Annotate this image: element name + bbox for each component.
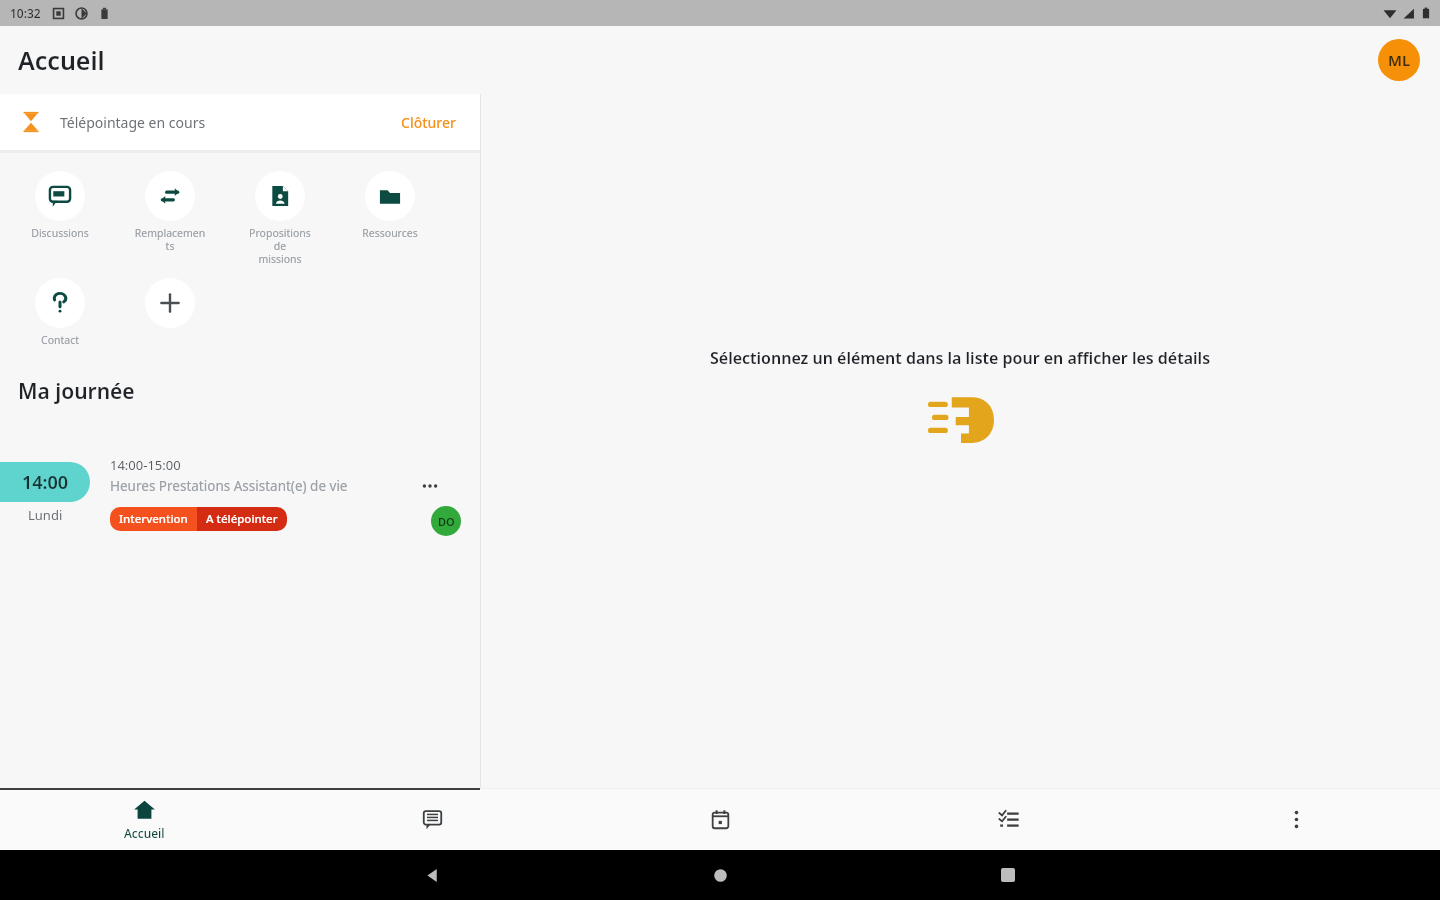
staticText: Discussions xyxy=(31,226,89,240)
button[interactable]: Clôturer xyxy=(397,109,460,136)
button[interactable]: Contact xyxy=(24,278,96,347)
staticText: DO xyxy=(438,514,455,529)
staticText: A télépointer xyxy=(206,511,278,527)
staticText: Intervention xyxy=(119,511,188,527)
staticText: Contact xyxy=(41,333,79,347)
button[interactable]: Tâches xyxy=(864,788,1152,850)
staticText: Remplacements xyxy=(134,226,206,253)
staticText: 14:00 xyxy=(22,470,69,495)
button[interactable]: Intervention xyxy=(110,507,287,531)
button[interactable]: Plus d'options xyxy=(416,472,444,500)
button[interactable]: 14:00 xyxy=(0,448,480,538)
staticText: Lundi xyxy=(28,506,63,524)
staticText: 10:32 xyxy=(10,5,41,21)
button[interactable]: Plus xyxy=(1152,788,1440,850)
staticText: Clôturer xyxy=(401,113,456,132)
staticText: Sélectionnez un élément dans la liste po… xyxy=(710,347,1211,369)
staticText: ML xyxy=(1388,50,1411,70)
button[interactable]: Ressources xyxy=(354,171,426,240)
button[interactable]: Télépointage en cours xyxy=(0,94,480,150)
staticText: Propositions de missions xyxy=(244,226,316,266)
button[interactable]: Discussions xyxy=(24,171,96,240)
staticText: Télépointage en cours xyxy=(60,113,206,132)
button[interactable]: Discussions xyxy=(288,788,576,850)
staticText: Accueil xyxy=(18,43,105,77)
button[interactable]: Planning xyxy=(576,788,864,850)
staticText: 14:00-15:00 xyxy=(110,456,181,474)
button[interactable]: Remplacements xyxy=(134,171,206,253)
staticText: Ma journée xyxy=(18,377,135,406)
button[interactable]: Ajouter xyxy=(134,278,206,328)
button[interactable]: ML xyxy=(1378,39,1420,81)
staticText: Heures Prestations Assistant(e) de vie xyxy=(110,477,348,495)
staticText: Ressources xyxy=(362,226,418,240)
button[interactable]: Propositions de missions xyxy=(244,171,316,266)
button[interactable]: Accueil xyxy=(0,788,288,850)
staticText: Accueil xyxy=(124,825,165,841)
